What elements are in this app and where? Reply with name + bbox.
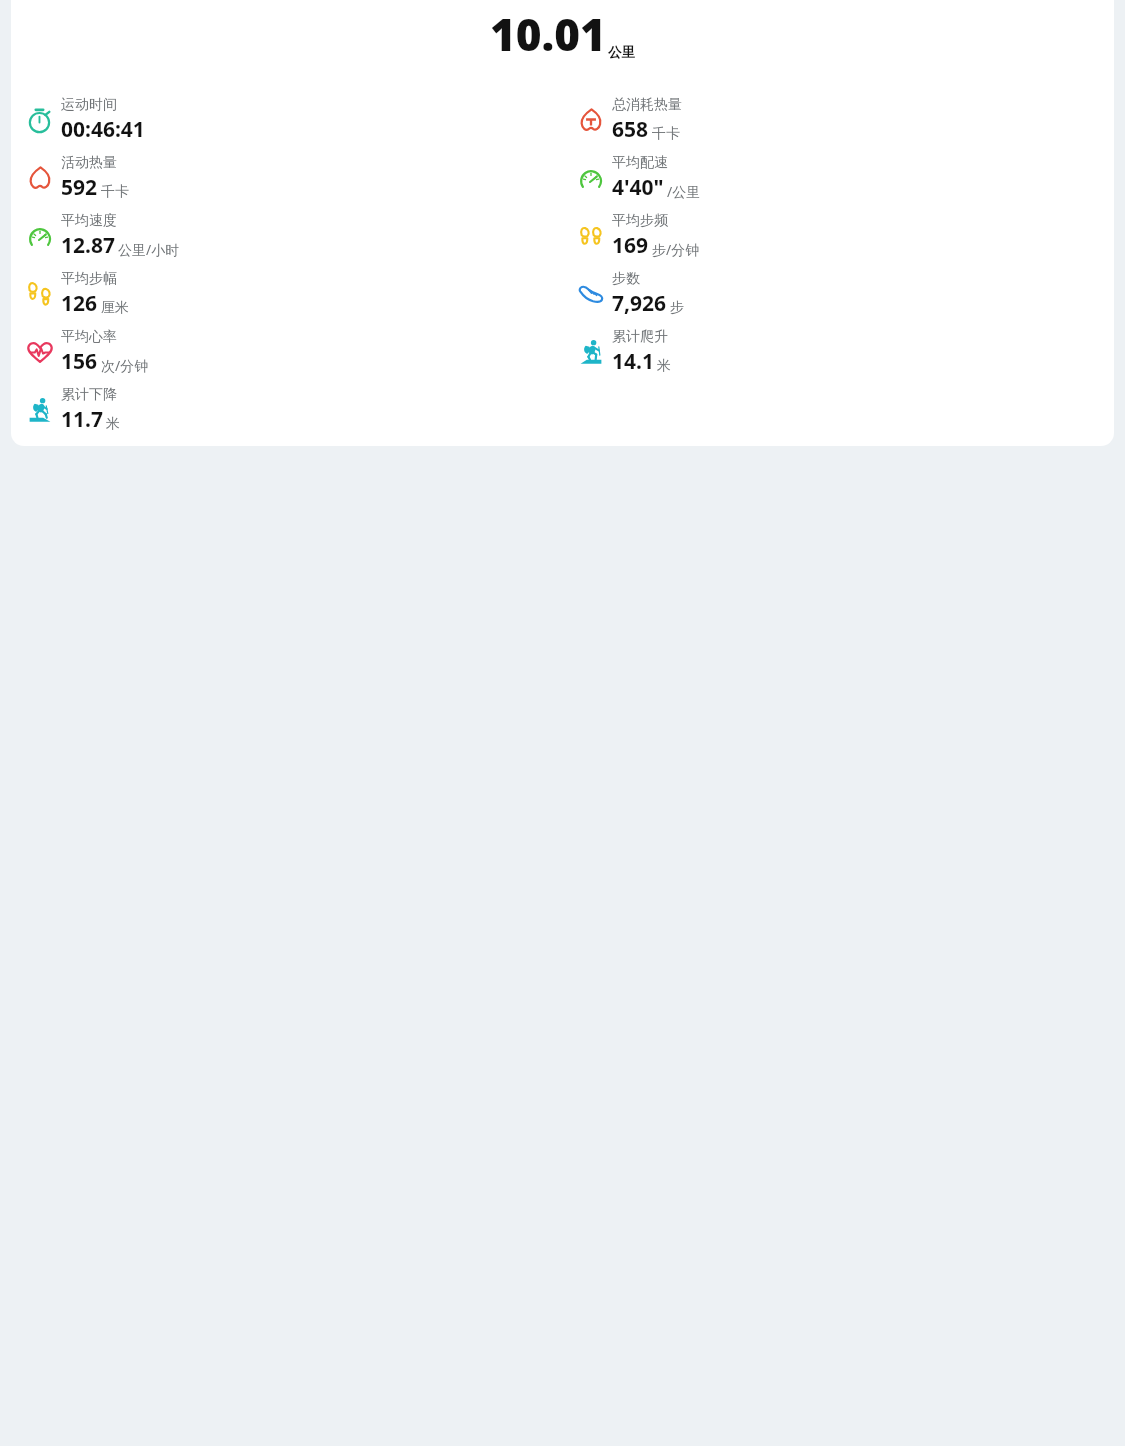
other: 累计爬升 <box>578 339 604 365</box>
staticText: 平均心率 <box>61 328 117 346</box>
staticText: 12.87 <box>61 231 115 260</box>
button[interactable]: 活动热量 <box>11 149 562 207</box>
staticText: 运动时间 <box>61 96 117 114</box>
staticText: 658 <box>612 115 649 144</box>
staticText: /公里 <box>667 182 701 201</box>
staticText: 11.7 <box>61 405 103 434</box>
staticText: 步 <box>670 299 684 317</box>
staticText: 步数 <box>612 270 640 288</box>
staticText: 次/分钟 <box>101 356 149 375</box>
other: 平均步幅 <box>27 281 53 307</box>
staticText: 厘米 <box>101 299 129 317</box>
button[interactable]: 平均步幅 <box>11 265 562 323</box>
staticText: 592 <box>61 173 98 202</box>
button[interactable]: 平均配速 <box>562 149 1114 207</box>
staticText: 14.1 <box>612 347 654 376</box>
staticText: 平均步频 <box>612 212 668 230</box>
other: 运动时间 <box>27 107 53 133</box>
other: 活动热量 <box>27 165 53 191</box>
other: 平均心率 <box>27 339 53 365</box>
other: 平均速度 <box>27 223 53 249</box>
staticText: 169 <box>612 231 649 260</box>
staticText: 公里 <box>608 44 635 61</box>
other: 平均步频 <box>578 223 604 249</box>
staticText: 00:46:41 <box>61 115 145 144</box>
staticText: 累计下降 <box>61 386 117 404</box>
button[interactable]: 平均心率 <box>11 323 562 381</box>
button[interactable]: 平均速度 <box>11 207 562 265</box>
staticText: 活动热量 <box>61 154 117 172</box>
button[interactable]: 运动时间 <box>11 91 562 149</box>
staticText: 平均配速 <box>612 154 668 172</box>
button[interactable]: 总消耗热量 <box>562 91 1114 149</box>
staticText: 平均速度 <box>61 212 117 230</box>
staticText: 米 <box>106 415 120 433</box>
button[interactable]: 累计下降 <box>11 381 562 439</box>
staticText: 7,926 <box>612 289 667 318</box>
staticText: 公里/小时 <box>118 240 180 259</box>
staticText: 千卡 <box>101 183 129 201</box>
button[interactable]: 平均步频 <box>562 207 1114 265</box>
staticText: 总消耗热量 <box>612 96 682 114</box>
staticText: 10.01 <box>490 4 606 64</box>
staticText: 平均步幅 <box>61 270 117 288</box>
staticText: 米 <box>657 357 671 375</box>
button[interactable]: 累计爬升 <box>562 323 1114 381</box>
staticText: 千卡 <box>652 125 680 143</box>
other: 平均配速 <box>578 165 604 191</box>
staticText: 步/分钟 <box>652 240 700 259</box>
button[interactable]: 步数 <box>562 265 1114 323</box>
staticText: 累计爬升 <box>612 328 668 346</box>
staticText: 126 <box>61 289 98 318</box>
other: 总消耗热量 <box>578 107 604 133</box>
staticText: 156 <box>61 347 98 376</box>
staticText: 4'40" <box>612 173 664 202</box>
other: 步数 <box>578 281 604 307</box>
other: 累计下降 <box>27 397 53 423</box>
